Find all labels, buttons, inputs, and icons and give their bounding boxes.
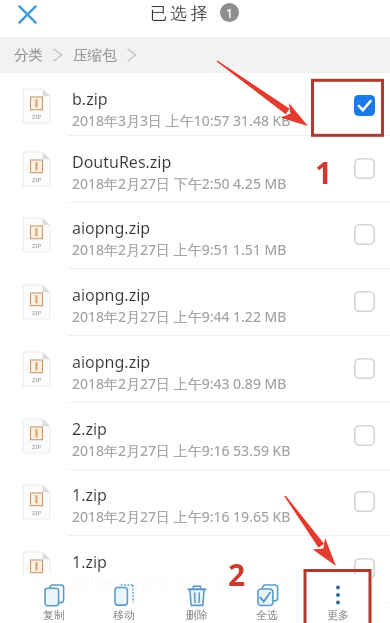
staticText: 2018年2月27日 上午9:51 1.51 MB: [72, 240, 287, 259]
button[interactable]: ZIP: [0, 202, 390, 269]
button[interactable]: ZIP: [0, 469, 390, 536]
staticText: 1: [315, 152, 333, 193]
button[interactable]: Select file: [353, 157, 376, 180]
button[interactable]: ZIP: [0, 336, 390, 403]
staticText: 2: [228, 554, 246, 595]
staticText: 2018年2月27日 上午9:16 21.73 KB: [72, 574, 291, 593]
staticText: b.zip: [72, 88, 108, 110]
staticText: 2018年2月27日 上午9:16 19.65 KB: [72, 507, 291, 526]
button[interactable]: Close: [11, 0, 43, 30]
button[interactable]: Select file: [353, 490, 376, 513]
button[interactable]: ZIP: [0, 136, 390, 203]
button[interactable]: 复制: [24, 574, 84, 623]
staticText: ZIP: [32, 113, 42, 121]
staticText: aiopng.zip: [72, 284, 151, 306]
staticText: ZIP: [32, 242, 42, 250]
button[interactable]: 移动: [94, 574, 154, 623]
staticText: 2.zip: [72, 418, 107, 440]
button[interactable]: Select file: [353, 223, 376, 246]
button[interactable]: Select file: [353, 94, 376, 117]
staticText: ZIP: [32, 176, 42, 184]
staticText: 2018年2月27日 上午9:43 0.89 MB: [72, 374, 287, 393]
staticText: 1.zip: [72, 484, 107, 506]
staticText: 已选择: [150, 3, 211, 24]
staticText: ZIP: [32, 376, 42, 384]
staticText: 2018年2月27日 下午2:50 4.25 MB: [72, 174, 287, 193]
staticText: 更多: [327, 608, 349, 622]
staticText: 移动: [113, 608, 135, 622]
staticText: aiopng.zip: [72, 217, 151, 239]
staticText: 全选: [256, 608, 278, 622]
button[interactable]: ZIP: [0, 403, 390, 470]
button[interactable]: 更多: [308, 574, 368, 623]
staticText: ZIP: [32, 509, 42, 517]
staticText: aiopng.zip: [72, 351, 151, 373]
button[interactable]: Select file: [353, 424, 376, 447]
staticText: 1.zip: [72, 551, 107, 573]
staticText: 2018年3月3日 上午10:57 31.48 KB: [72, 111, 291, 130]
button[interactable]: ZIP: [0, 69, 390, 136]
button[interactable]: 删除: [167, 574, 227, 623]
button[interactable]: 压缩包: [73, 46, 117, 64]
staticText: ZIP: [32, 309, 42, 317]
button[interactable]: 全选: [237, 574, 297, 623]
button[interactable]: 分类: [14, 46, 43, 64]
button[interactable]: Select file: [353, 357, 376, 380]
button[interactable]: Select file: [353, 557, 376, 580]
staticText: 1: [226, 5, 233, 21]
staticText: 2018年2月27日 上午9:44 1.22 MB: [72, 307, 287, 326]
button[interactable]: Select file: [353, 290, 376, 313]
button[interactable]: ZIP: [0, 269, 390, 336]
staticText: DoutuRes.zip: [72, 151, 172, 173]
staticText: 复制: [43, 608, 65, 622]
staticText: ZIP: [32, 443, 42, 451]
button[interactable]: ZIP: [0, 536, 390, 603]
staticText: 删除: [186, 608, 208, 622]
staticText: 2018年2月27日 上午9:16 53.59 KB: [72, 441, 291, 460]
